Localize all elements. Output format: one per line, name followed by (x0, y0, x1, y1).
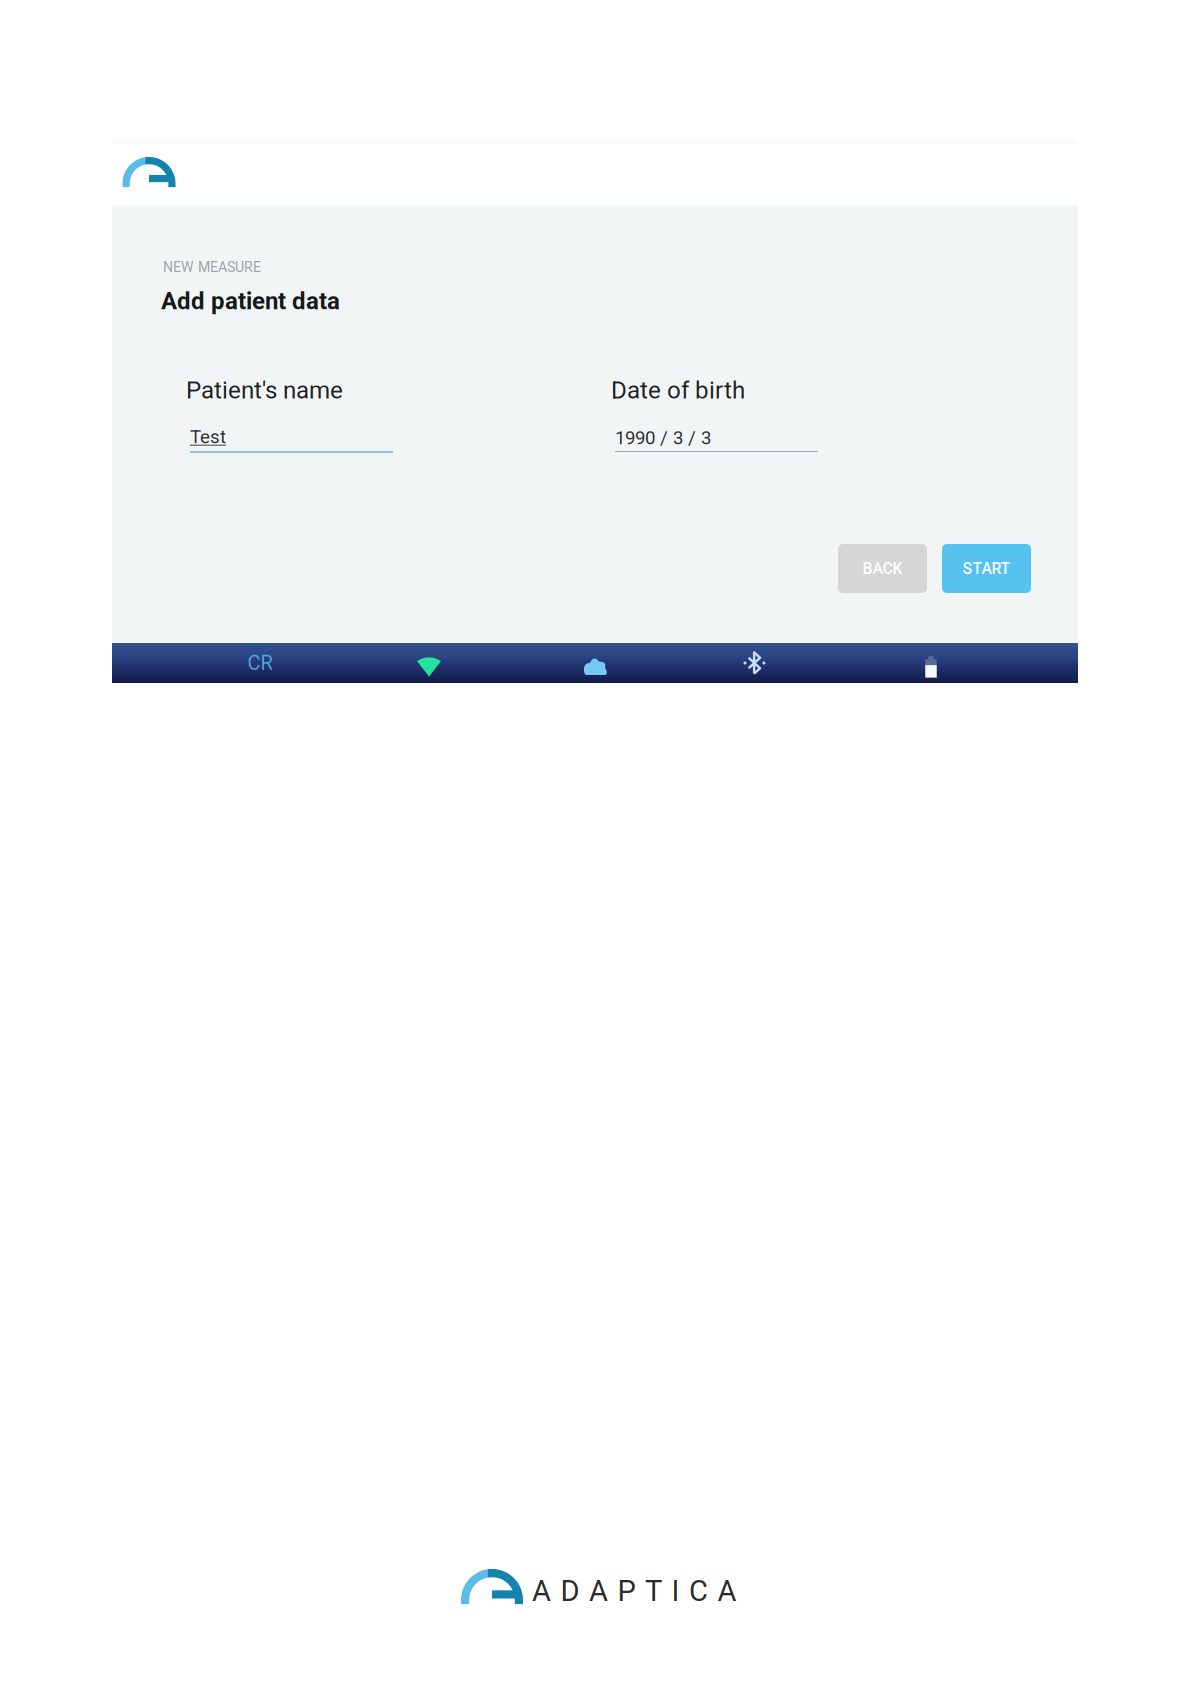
staticText: CR (247, 651, 272, 675)
staticText: NEW MEASURE (163, 259, 261, 276)
staticText: 1990 / 3 / 3 (615, 427, 711, 449)
staticText: Add patient data (161, 287, 340, 315)
staticText: ADAPTICA (532, 1574, 736, 1608)
button[interactable]: BACK (838, 544, 927, 593)
staticText: Test (190, 426, 226, 448)
staticText: Date of birth (611, 376, 745, 404)
staticText: Patient's name (186, 376, 343, 404)
button[interactable]: Cloud sync (536, 643, 656, 683)
button[interactable]: Battery (871, 643, 991, 683)
staticText: BACK (862, 559, 902, 578)
button[interactable]: Wi-Fi (369, 643, 489, 683)
staticText: START (962, 559, 1010, 578)
button[interactable]: Carrier status (200, 643, 320, 683)
button[interactable]: START (942, 544, 1031, 593)
button[interactable]: Bluetooth (695, 643, 815, 683)
